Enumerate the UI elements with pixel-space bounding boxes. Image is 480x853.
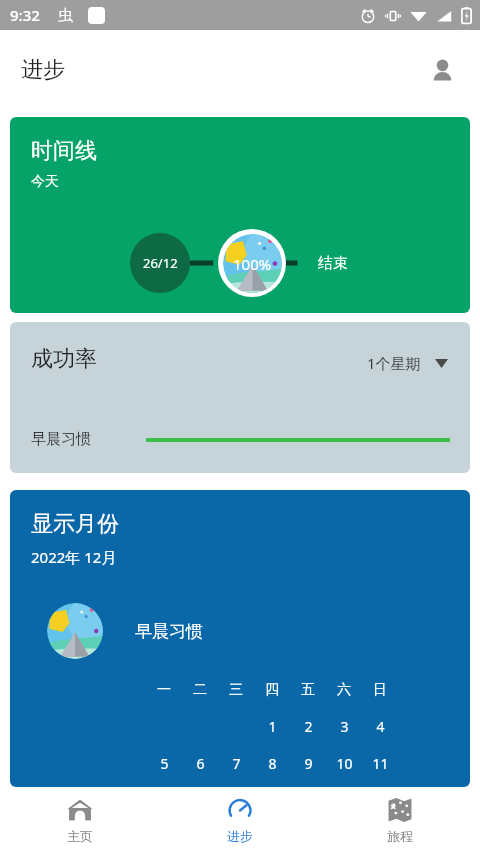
staticText: 2022年 12月	[31, 547, 117, 567]
button[interactable]: 100%	[218, 229, 286, 297]
staticText: 四	[265, 681, 279, 699]
staticText: 进步	[21, 56, 65, 84]
staticText: 显示月份	[31, 510, 119, 538]
staticText: 5	[160, 754, 169, 773]
button[interactable]: 主页	[0, 787, 160, 853]
staticText: 旅程	[387, 828, 413, 844]
button[interactable]: 显示月份	[10, 490, 470, 787]
staticText: 早晨习惯	[135, 621, 203, 642]
staticText: 成功率	[31, 345, 97, 373]
staticText: 26/12	[143, 254, 178, 272]
staticText: 二	[193, 681, 207, 699]
staticText: 1	[268, 717, 277, 736]
staticText: 11	[372, 754, 389, 773]
staticText: 8	[268, 754, 277, 773]
staticText: 五	[301, 681, 315, 699]
staticText: 4	[376, 717, 385, 736]
button[interactable]: 成功率	[10, 322, 470, 473]
staticText: 2	[304, 717, 313, 736]
staticText: 1个星期	[367, 353, 421, 373]
staticText: 100%	[233, 254, 272, 274]
staticText: 7	[232, 754, 241, 773]
staticText: 6	[196, 754, 205, 773]
staticText: 3	[340, 717, 349, 736]
staticText: 虫	[58, 6, 73, 25]
staticText: 9	[304, 754, 313, 773]
staticText: 10	[336, 754, 353, 773]
staticText: 主页	[67, 828, 93, 844]
staticText: 进步	[227, 828, 253, 844]
button[interactable]: 26/12	[130, 233, 190, 293]
staticText: 三	[229, 681, 243, 699]
staticText: 日	[373, 681, 387, 699]
staticText: 一	[157, 681, 171, 699]
button[interactable]: 进步	[160, 787, 320, 853]
button[interactable]: Account	[422, 50, 462, 90]
staticText: 结束	[318, 254, 348, 273]
staticText: 9:32	[10, 5, 40, 25]
button[interactable]: 1个星期	[363, 351, 452, 375]
staticText: 早晨习惯	[31, 430, 91, 449]
staticText: 时间线	[31, 137, 97, 165]
button[interactable]: 时间线	[10, 117, 470, 313]
staticText: 六	[337, 681, 351, 699]
staticText: 今天	[31, 173, 59, 191]
button[interactable]: 旅程	[320, 787, 480, 853]
